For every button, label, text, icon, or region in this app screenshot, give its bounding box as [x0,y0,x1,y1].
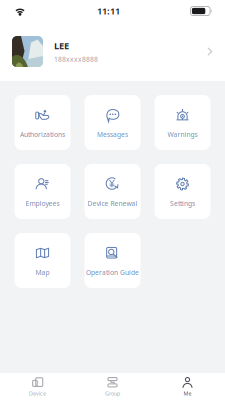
button[interactable]: Employees [14,164,70,219]
button[interactable]: Warnings [154,95,210,150]
staticText: Settings [170,199,195,208]
button[interactable]: Me [150,373,225,400]
staticText: Device Renewal [87,199,137,208]
staticText: LEE [54,39,69,52]
staticText: Map [35,268,49,277]
button[interactable]: Device [0,373,75,400]
staticText: Messages [97,130,128,139]
staticText: Employees [25,199,59,208]
staticText: Authorizations [20,130,65,139]
staticText: 11:11 [97,5,120,17]
staticText: 188xxxx8888 [54,55,98,64]
button[interactable]: Operation Guide [84,233,140,288]
staticText: Group [105,390,120,397]
staticText: Operation Guide [86,268,139,277]
button[interactable]: Map [14,233,70,288]
button[interactable]: LEE [0,22,225,81]
staticText: Me [183,390,191,397]
button[interactable]: Group [75,373,150,400]
button[interactable]: Messages [84,95,140,150]
staticText: Device [29,390,46,397]
button[interactable]: Device Renewal [84,164,140,219]
button[interactable]: Settings [154,164,210,219]
button[interactable]: Authorizations [14,95,70,150]
staticText: Warnings [167,130,197,139]
